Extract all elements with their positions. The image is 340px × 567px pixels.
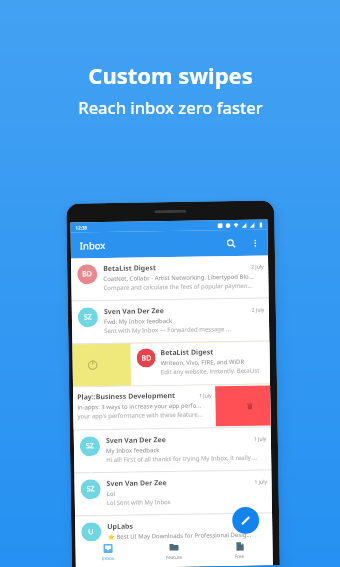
staticText: 2 July <box>251 264 264 271</box>
button[interactable]: BD <box>130 341 270 386</box>
staticText: Compare and calculate the fees of popula… <box>103 282 252 292</box>
staticText: 12:35 <box>75 224 88 230</box>
staticText: 2 July <box>252 306 265 314</box>
button[interactable]: SZ <box>74 427 271 473</box>
button[interactable]: BD <box>71 255 269 301</box>
staticText: Inbox <box>102 555 115 561</box>
staticText: BetaList Digest <box>103 262 251 274</box>
staticText: BD <box>82 269 92 279</box>
staticText: Feature <box>166 554 183 560</box>
staticText: 1 July <box>199 392 212 400</box>
staticText: Custom swipes <box>88 60 253 90</box>
staticText: Lol <box>107 490 116 498</box>
staticText: BD <box>141 353 152 363</box>
staticText: Sven Van Der Zee <box>104 305 252 317</box>
staticText: CoatNet, Collabr - Artist Networking, Li… <box>103 273 254 283</box>
button[interactable]: SZ <box>72 298 269 344</box>
staticText: SZ <box>87 484 95 494</box>
button[interactable]: Compose <box>232 507 259 534</box>
staticText: ⭐ Best UI May Downloads for Professional… <box>107 531 251 541</box>
staticText: UpLabs <box>107 519 268 532</box>
staticText: your app's performance with these featur… <box>77 410 202 420</box>
staticText: U <box>88 527 94 537</box>
staticText: Fwd: My Inbox feedback <box>104 317 173 326</box>
staticText: Edit any website, instantly. BetaList <box>161 367 260 376</box>
staticText: BetaList Digest <box>160 347 214 358</box>
button[interactable]: Search <box>220 232 242 254</box>
button[interactable]: U <box>75 513 272 542</box>
staticText: Sven Van Der Zee <box>106 477 255 489</box>
staticText: Free <box>235 553 245 559</box>
button[interactable]: Inbox <box>75 540 141 567</box>
button[interactable]: Feature <box>140 539 207 567</box>
staticText: Play::Business Development <box>77 391 199 402</box>
button[interactable]: Play::Business Development <box>73 385 216 429</box>
staticText: Hi all! First of all thanks for trying M… <box>106 454 258 464</box>
staticText: 1 July <box>254 435 267 443</box>
staticText: Sent with My Inbox — Forwarded message .… <box>104 325 231 335</box>
staticText: Writeon, Vivo, FIRE, and WiDR <box>161 358 245 367</box>
staticText: Inbox <box>80 239 106 252</box>
staticText: SZ <box>84 312 92 322</box>
staticText: 1 July <box>254 478 268 486</box>
staticText: Reach inbox zero faster <box>78 96 263 118</box>
staticText: SZ <box>86 441 94 451</box>
button[interactable]: More options <box>247 235 263 251</box>
staticText: Lol Sent with My Inbox <box>107 498 171 507</box>
staticText: My Inbox feedback <box>106 446 160 455</box>
button[interactable]: SZ <box>74 470 272 516</box>
staticText: in-apps: 3 ways to increase your app per… <box>77 402 201 411</box>
staticText: Sven Van Der Zee <box>106 434 254 446</box>
button[interactable]: Free <box>206 538 273 566</box>
